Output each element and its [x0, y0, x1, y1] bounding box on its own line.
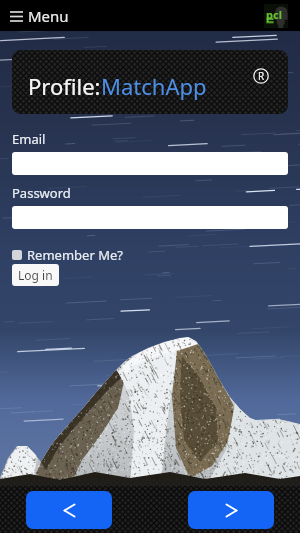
button[interactable]: Remember Me? [12, 246, 123, 264]
button[interactable]: pcl logo [264, 4, 288, 28]
button[interactable]: Log in [12, 264, 59, 286]
staticText: pcl [266, 7, 282, 22]
staticText: Profile: [28, 71, 101, 101]
staticText: Menu [28, 6, 69, 26]
staticText: Password [12, 184, 71, 202]
button[interactable]: Menu [8, 2, 71, 30]
staticText: MatchApp [101, 71, 207, 101]
staticText: Log in [18, 267, 53, 283]
button[interactable]: Previous [26, 491, 112, 529]
button[interactable] [12, 206, 288, 229]
staticText: Email [12, 130, 46, 148]
staticText: R [258, 69, 265, 83]
button[interactable]: Next [188, 491, 274, 529]
staticText: Remember Me? [27, 246, 123, 264]
button[interactable] [12, 152, 288, 175]
